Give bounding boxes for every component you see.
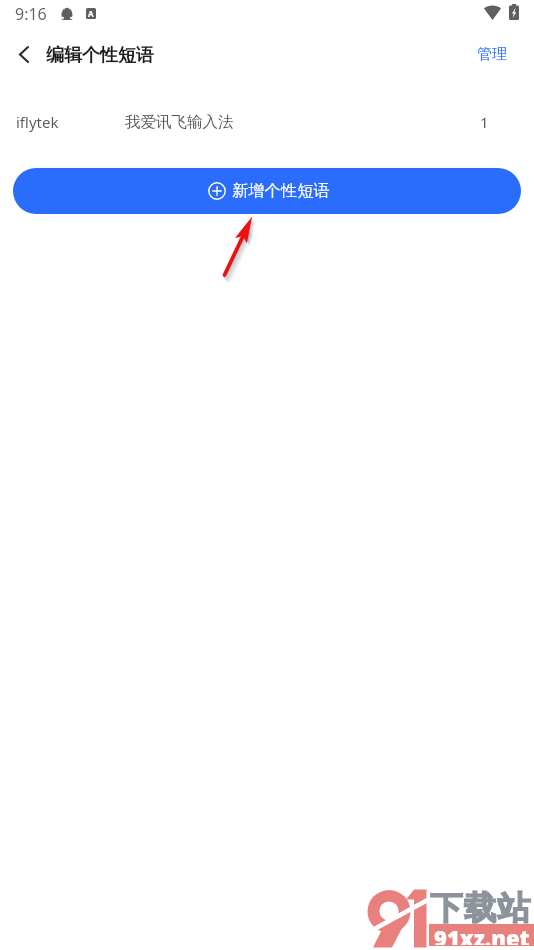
staticText: 下载站 bbox=[430, 888, 532, 929]
button[interactable]: Back bbox=[8, 38, 40, 70]
button[interactable]: 管理 bbox=[459, 33, 534, 76]
staticText: 9:16 bbox=[15, 3, 47, 25]
staticText: iflytek bbox=[16, 112, 59, 132]
staticText: 管理 bbox=[477, 45, 507, 64]
staticText: 新增个性短语 bbox=[232, 181, 331, 201]
staticText: 我爱讯飞输入法 bbox=[125, 112, 234, 132]
staticText: 1 bbox=[480, 112, 489, 132]
staticText: 91xz.net bbox=[434, 923, 530, 945]
button[interactable]: iflytek bbox=[0, 105, 534, 139]
staticText: A bbox=[88, 8, 94, 19]
staticText: 编辑个性短语 bbox=[46, 44, 154, 67]
button[interactable]: 新增个性短语 bbox=[13, 168, 521, 214]
